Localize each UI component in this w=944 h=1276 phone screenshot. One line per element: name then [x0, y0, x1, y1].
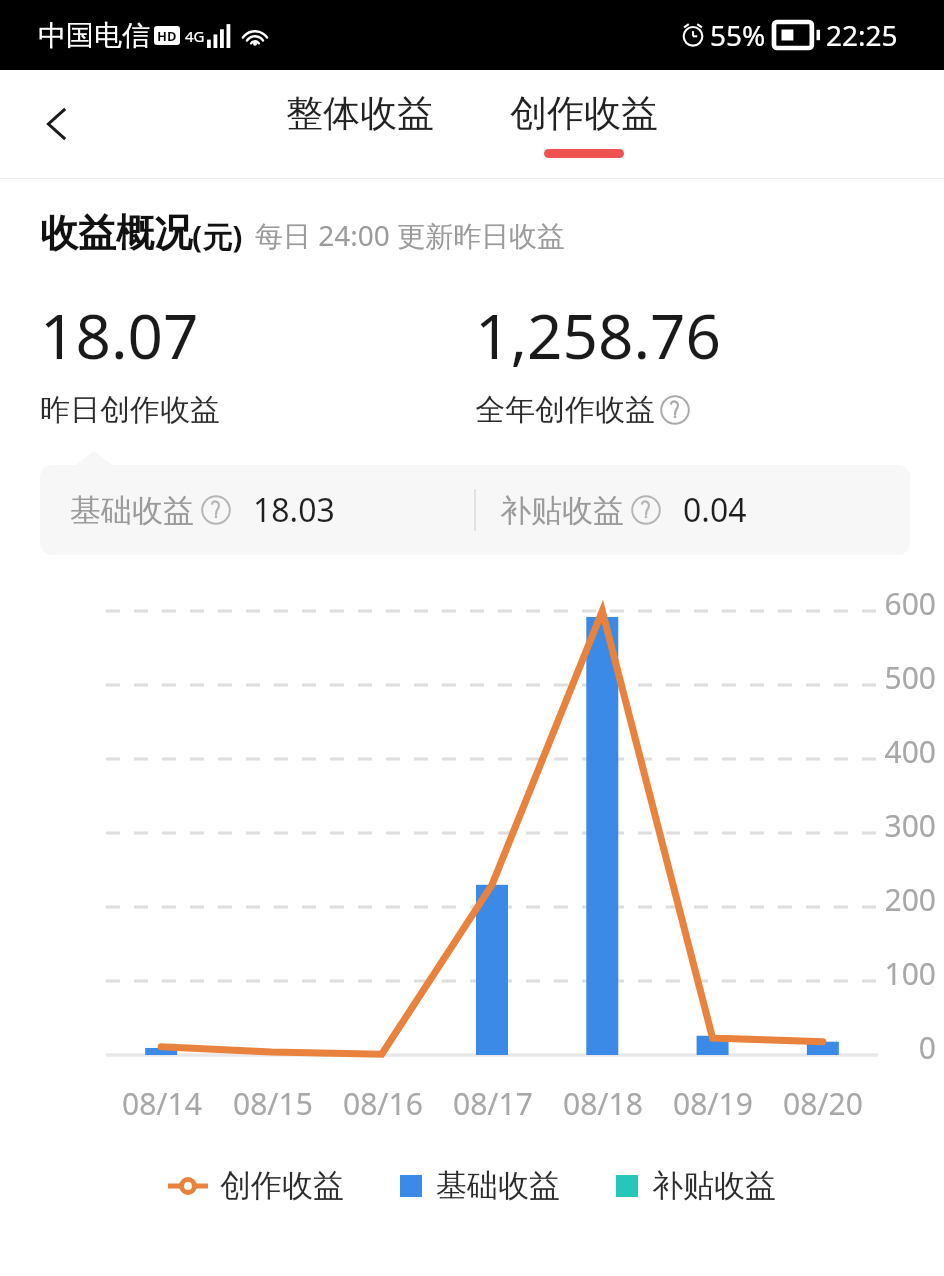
staticText: 创作收益 [220, 1166, 344, 1205]
button[interactable]: 帮助 [660, 395, 690, 425]
button[interactable]: 基础收益 [400, 1166, 560, 1205]
button[interactable]: 创作收益 [486, 90, 682, 158]
staticText: 55% [710, 16, 766, 54]
staticText: 补贴收益 [652, 1166, 776, 1205]
staticText: 收益概况 [40, 209, 192, 257]
staticText: 0.04 [683, 488, 747, 532]
staticText: 基础收益 [70, 491, 194, 530]
staticText: HD [157, 27, 177, 45]
staticText: 18.07 [40, 293, 199, 377]
staticText: 400 [884, 731, 936, 772]
staticText: 整体收益 [286, 90, 434, 137]
staticText: 200 [884, 879, 936, 920]
staticText: 昨日创作收益 [40, 391, 220, 429]
staticText: 18.03 [253, 488, 335, 532]
staticText: 08/15 [233, 1083, 313, 1124]
staticText: 100 [884, 953, 936, 994]
staticText: 4G [185, 26, 205, 46]
staticText: 1,258.76 [475, 293, 722, 377]
button[interactable]: 补贴收益 [476, 488, 902, 532]
staticText: 每日 24:00 更新昨日收益 [255, 216, 566, 254]
staticText: 08/17 [453, 1083, 533, 1124]
staticText: 补贴收益 [500, 491, 624, 530]
button[interactable]: 基础收益 [48, 488, 474, 532]
staticText: 基础收益 [436, 1166, 560, 1205]
staticText: 500 [884, 657, 936, 698]
staticText: 全年创作收益 [475, 391, 655, 429]
staticText: 08/18 [563, 1083, 643, 1124]
button[interactable]: Back [24, 90, 92, 158]
button[interactable]: 补贴收益 [616, 1166, 776, 1205]
staticText: (元) [192, 216, 243, 257]
staticText: 08/16 [343, 1083, 423, 1124]
staticText: 22:25 [826, 16, 898, 54]
staticText: 创作收益 [510, 90, 658, 137]
staticText: 300 [884, 805, 936, 846]
staticText: 08/14 [122, 1083, 202, 1124]
staticText: 600 [884, 583, 936, 624]
staticText: 中国电信 [38, 18, 150, 53]
button[interactable]: 创作收益 [168, 1166, 344, 1205]
button[interactable]: 整体收益 [262, 90, 458, 137]
staticText: 08/19 [673, 1083, 753, 1124]
staticText: 0 [918, 1027, 936, 1068]
staticText: 08/20 [783, 1083, 863, 1124]
